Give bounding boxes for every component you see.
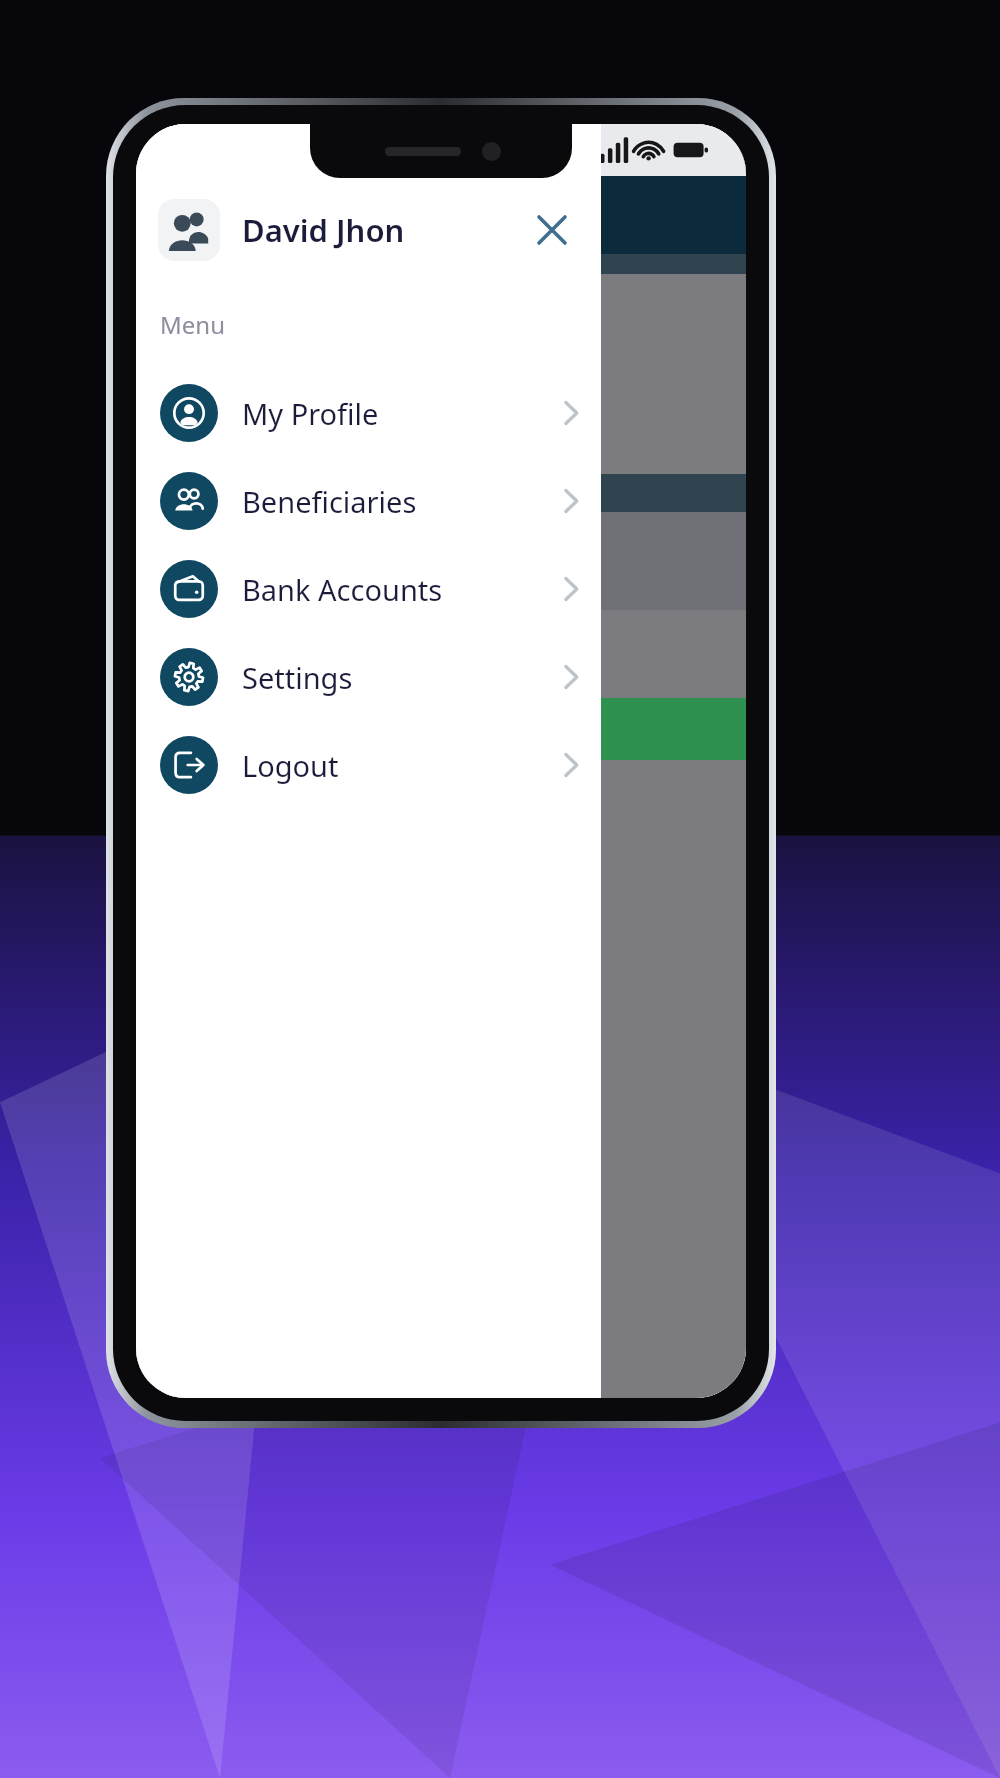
staticText: David Jhon <box>242 209 405 251</box>
button[interactable]: Logout <box>136 721 601 809</box>
staticText: Logout <box>242 746 339 785</box>
button[interactable]: Close menu <box>525 203 579 257</box>
button[interactable]: My Profile <box>136 369 601 457</box>
button[interactable]: Beneficiaries <box>136 457 601 545</box>
staticText: Settings <box>242 658 353 697</box>
staticText: Bank Accounts <box>242 570 443 609</box>
button[interactable]: Settings <box>136 633 601 721</box>
staticText: Menu <box>160 308 225 341</box>
staticText: Verified <box>156 711 261 748</box>
button[interactable]: Bank Accounts <box>136 545 601 633</box>
staticText: My Profile <box>242 394 379 433</box>
staticText: Beneficiaries <box>242 482 417 521</box>
